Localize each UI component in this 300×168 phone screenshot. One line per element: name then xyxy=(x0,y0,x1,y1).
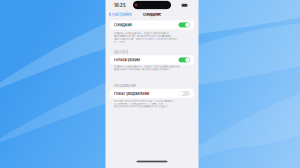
staticText: Настройки xyxy=(112,12,131,17)
staticText: красным оттенком, когда вокруг темно. xyxy=(114,68,170,71)
button[interactable]: Ночной режим xyxy=(110,55,194,64)
staticText: автоматически, когда iPhone на зарядке, xyxy=(114,34,172,38)
staticText: Новые уведомления будут отображаться xyxy=(114,99,173,102)
staticText: 16:25 xyxy=(114,3,126,8)
button[interactable]: Настройки xyxy=(107,11,133,18)
staticText: Ожидание xyxy=(143,12,161,16)
staticText: УВЕДОМЛЕНИЯ xyxy=(114,84,136,88)
staticText: ДИСПЛЕЙ xyxy=(114,51,128,54)
button[interactable]: Ожидание xyxy=(110,20,194,29)
staticText: Режим «Ожидание» будет отображать данные xyxy=(114,65,180,68)
staticText: уведомления отображаться не будут. xyxy=(114,105,168,108)
staticText: Ожидание xyxy=(114,22,132,27)
button[interactable]: Показ уведомлений xyxy=(110,89,194,98)
staticText: Показ уведомлений xyxy=(114,91,149,96)
staticText: Ночной режим xyxy=(114,57,140,62)
staticText: заблокирован, расположен горизонтально xyxy=(114,37,177,40)
staticText: и стоит. xyxy=(114,40,126,43)
staticText: Режим «Ожидание» будет включаться xyxy=(114,32,168,35)
staticText: в режиме «Ожидание». Сами эти xyxy=(114,102,163,105)
